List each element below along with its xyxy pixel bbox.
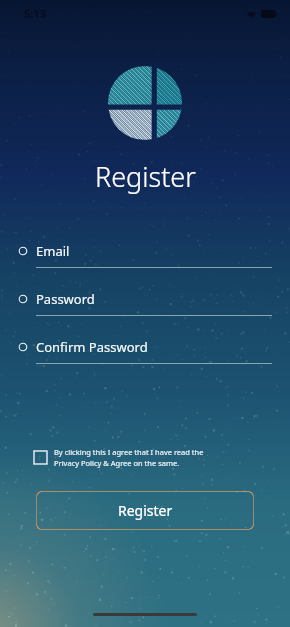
staticText: Register [95, 158, 196, 195]
staticText: Confirm Password [36, 338, 148, 356]
button[interactable]: Email [18, 242, 272, 268]
button[interactable]: Register [36, 491, 254, 530]
button[interactable]: Confirm Password [18, 338, 272, 364]
staticText: 5:13 [24, 6, 46, 21]
staticText: Email [36, 242, 70, 260]
button[interactable]: Password [18, 290, 272, 316]
button[interactable]: By clicking this I agree that I have rea… [34, 447, 260, 468]
staticText: Password [36, 290, 95, 308]
staticText: Register [118, 501, 173, 520]
staticText: Privacy Policy & Agree on the same. [54, 458, 180, 468]
staticText: By clicking this I agree that I have rea… [54, 447, 204, 457]
